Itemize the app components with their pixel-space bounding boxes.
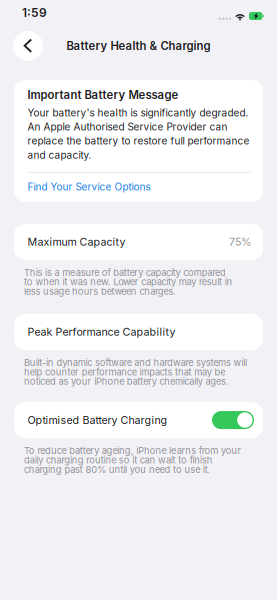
staticText: Important Battery Message — [27, 88, 178, 102]
staticText: Find Your Service Options — [27, 181, 150, 193]
button[interactable]: Find Your Service Options — [27, 173, 251, 202]
staticText: This is a measure of battery capacity co… — [24, 267, 233, 297]
staticText: Peak Performance Capability — [27, 325, 175, 338]
staticText: 75% — [229, 235, 251, 248]
button[interactable]: Back — [13, 31, 43, 61]
button[interactable]: Maximum Capacity — [0, 224, 277, 260]
staticText: Maximum Capacity — [27, 235, 125, 248]
staticText: Battery Health & Charging — [66, 39, 210, 53]
staticText: Optimised Battery Charging — [27, 414, 167, 426]
staticText: Built-in dynamic software and hardware s… — [24, 357, 247, 387]
button[interactable]: Optimised Battery Charging — [212, 411, 254, 429]
button[interactable]: Peak Performance Capability — [0, 314, 277, 350]
staticText: To reduce battery ageing, iPhone learns … — [24, 445, 241, 475]
staticText: 1:59 — [22, 5, 47, 20]
staticText: Your battery's health is significantly d… — [27, 107, 249, 161]
